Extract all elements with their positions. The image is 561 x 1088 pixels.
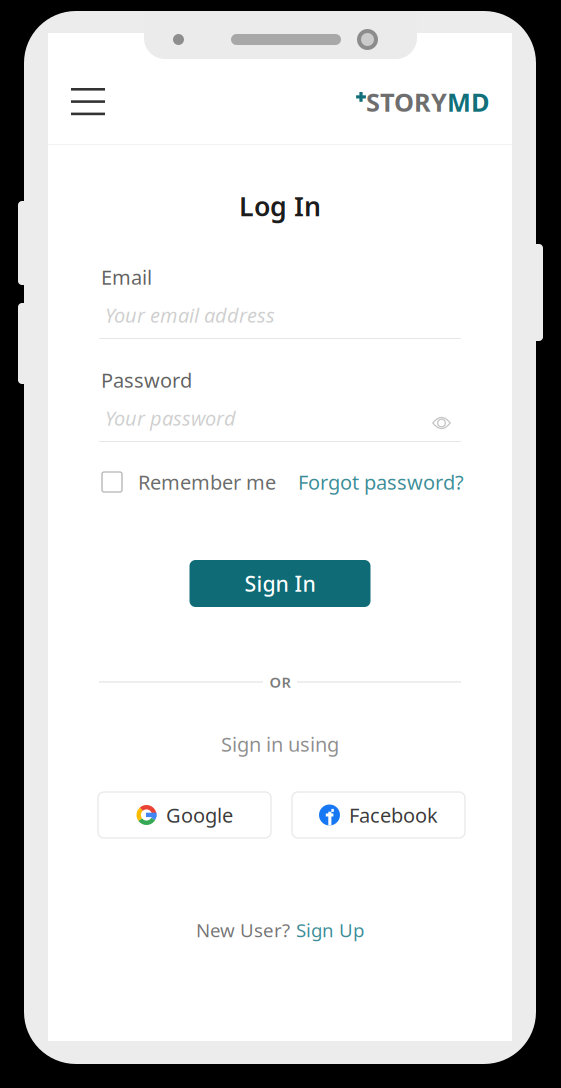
staticText: Sign in using: [221, 731, 339, 757]
staticText: New User?: [196, 918, 290, 942]
button[interactable]: Google: [98, 792, 271, 838]
staticText: Your password: [105, 405, 236, 431]
staticText: Sign In: [244, 569, 315, 598]
button[interactable]: Remember me: [102, 470, 276, 494]
staticText: MD: [447, 85, 490, 119]
staticText: Facebook: [349, 802, 438, 828]
button[interactable]: Sign In: [189, 560, 370, 607]
staticText: Forgot password?: [298, 469, 464, 495]
button[interactable]: Menu: [61, 80, 121, 125]
staticText: Your email address: [105, 302, 275, 328]
staticText: Password: [101, 367, 192, 393]
button[interactable]: Show password: [426, 410, 457, 436]
button[interactable]: Forgot password?: [298, 470, 464, 494]
button[interactable]: Facebook: [292, 792, 465, 838]
staticText: STORY: [366, 85, 447, 119]
staticText: Remember me: [138, 469, 276, 495]
staticText: Email: [101, 264, 152, 290]
staticText: Sign Up: [296, 918, 364, 942]
staticText: OR: [269, 672, 290, 692]
staticText: Log In: [239, 188, 321, 224]
staticText: Google: [166, 802, 233, 828]
button[interactable]: Sign Up: [296, 918, 364, 942]
